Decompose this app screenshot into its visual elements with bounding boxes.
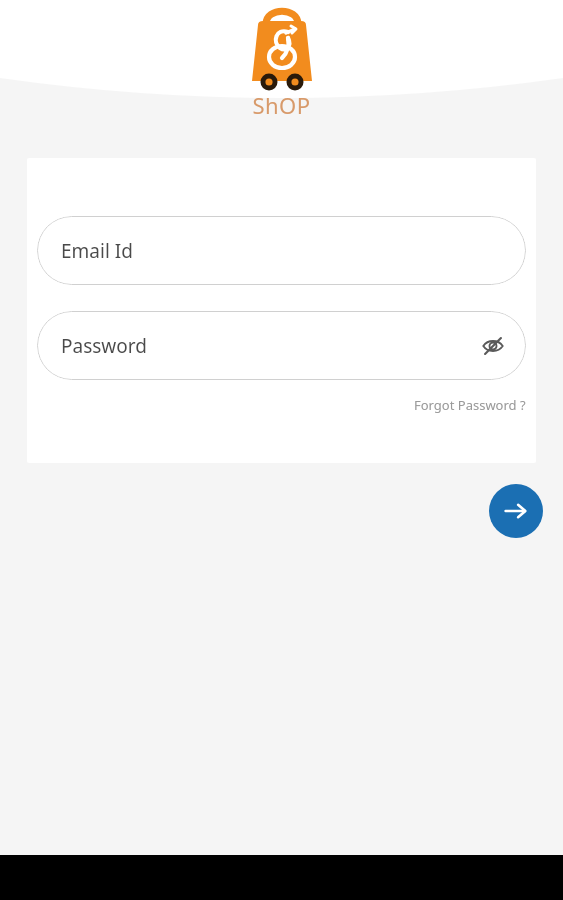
staticText: Password: [61, 333, 147, 359]
staticText: Email Id: [61, 238, 133, 264]
button[interactable]: Show password: [478, 331, 508, 361]
button[interactable]: Email Id: [37, 216, 526, 285]
button[interactable]: Forgot Password ?: [404, 392, 536, 418]
button[interactable]: Password: [37, 311, 526, 380]
staticText: ShOP: [252, 90, 311, 120]
staticText: Forgot Password ?: [414, 396, 526, 414]
button[interactable]: Sign in: [489, 484, 543, 538]
